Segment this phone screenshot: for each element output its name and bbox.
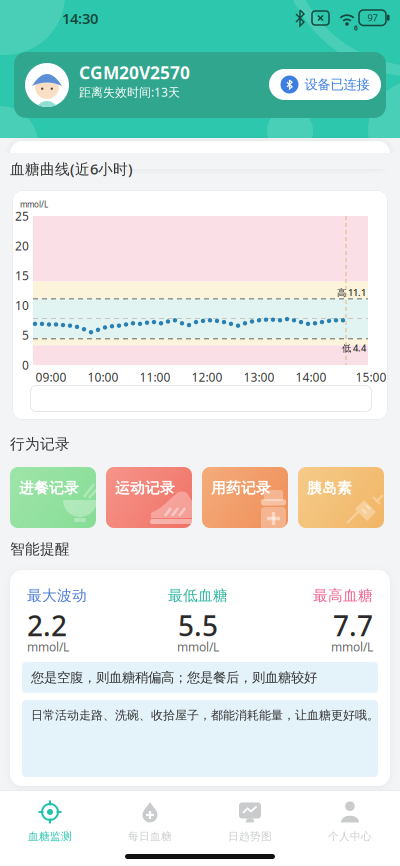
staticText: 胰岛素 [307,479,352,497]
staticText: 最高血糖 [313,586,373,604]
button[interactable]: 日趋势图 [210,797,290,845]
button[interactable]: CGM20V2570 [14,52,386,118]
staticText: 用药记录 [211,479,271,497]
staticText: 13:00 [243,369,274,385]
staticText: 血糖监测 [28,830,72,843]
staticText: 设备已连接 [304,76,369,93]
staticText: 14:00 [295,369,326,385]
staticText: 运动记录 [115,479,175,497]
staticText: mmol/L [20,199,48,210]
staticText: 6 [354,23,358,32]
staticText: 15:00 [355,369,386,385]
staticText: 0 [22,357,29,373]
staticText: mmol/L [27,639,69,655]
staticText: 最大波动 [27,586,87,604]
staticText: 10 [15,297,29,313]
staticText: 15 [15,268,29,283]
staticText: 12:00 [191,369,222,385]
staticText: 进餐记录 [19,479,79,497]
button[interactable]: 个人中心 [310,797,390,845]
button[interactable]: 设备已连接 [269,69,381,100]
staticText: 最低血糖 [168,586,228,604]
staticText: 2.2 [27,607,67,644]
staticText: 5 [22,327,29,343]
staticText: CGM20V2570 [79,61,190,84]
button[interactable]: 进餐记录 [10,467,96,528]
staticText: 14:30 [62,8,98,28]
staticText: 个人中心 [328,830,372,843]
staticText: 血糖曲线(近6小时) [10,159,133,178]
staticText: 低 4.4 [342,342,366,354]
button[interactable]: 运动记录 [106,467,192,528]
staticText: 5.5 [178,607,218,644]
staticText: 行为记录 [10,435,70,453]
button[interactable]: 血糖监测 [10,797,90,845]
staticText: mmol/L [331,639,373,655]
button[interactable]: 每日血糖 [110,797,190,845]
staticText: 97 [367,12,377,24]
staticText: 25 [15,208,29,224]
staticText: 距离失效时间:13天 [79,84,180,100]
staticText: 高 11.1 [337,286,366,299]
staticText: 7.7 [333,607,373,644]
staticText: mmol/L [177,639,219,655]
staticText: 09:00 [35,369,66,385]
button[interactable]: 胰岛素 [298,467,384,528]
staticText: 11:00 [139,369,170,385]
staticText: 每日血糖 [128,830,172,843]
staticText: 智能提醒 [10,540,70,558]
staticText: 日趋势图 [228,830,272,843]
staticText: 20 [15,238,29,254]
staticText: 10:00 [87,369,118,385]
staticText: 日常活动走路、洗碗、收拾屋子，都能消耗能量，让血糖更好哦。 [31,708,379,723]
staticText: 您是空腹，则血糖稍偏高；您是餐后，则血糖较好 [31,669,317,686]
button[interactable]: 用药记录 [202,467,288,528]
